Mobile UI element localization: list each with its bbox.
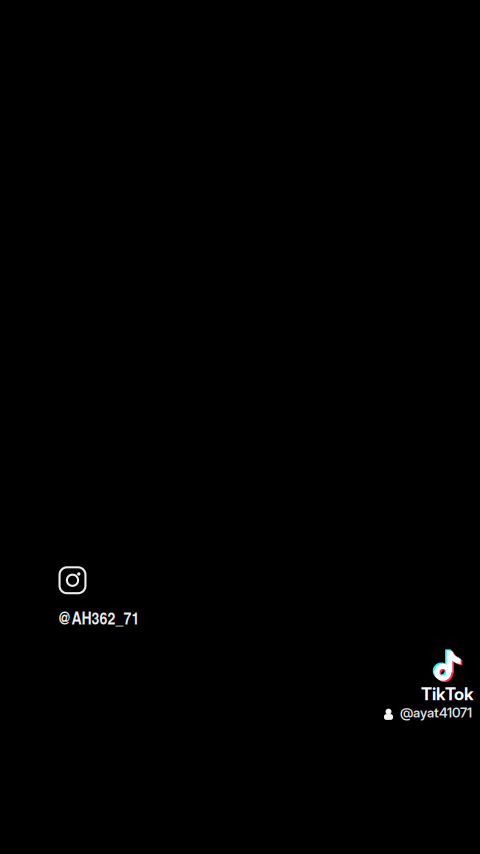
- button[interactable]: Instagram @AH362_71: [58, 566, 139, 630]
- button[interactable]: TikTok @ayat41071: [354, 649, 474, 721]
- staticText: TikTok: [421, 683, 474, 704]
- staticText: @ayat41071: [400, 704, 472, 721]
- staticText: @AH362_71: [57, 605, 139, 630]
